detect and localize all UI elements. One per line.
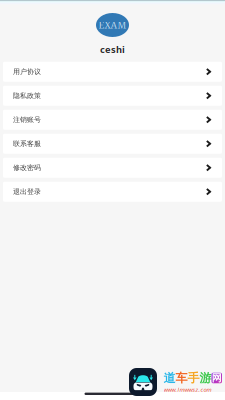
staticText: 注销账号 xyxy=(13,115,41,124)
staticText: 用户协议 xyxy=(13,67,41,76)
button[interactable]: 修改密码 xyxy=(3,158,222,178)
staticText: 道 xyxy=(163,370,175,385)
staticText: ceshi xyxy=(100,43,125,56)
staticText: 手 xyxy=(187,370,199,385)
staticText: 网 xyxy=(212,372,222,384)
button[interactable]: 注销账号 xyxy=(3,110,222,130)
staticText: 游 xyxy=(199,370,211,385)
staticText: EXAM xyxy=(98,19,126,31)
staticText: 隐私政策 xyxy=(13,91,41,100)
staticText: 联系客服 xyxy=(13,139,41,148)
staticText: 车 xyxy=(175,370,187,385)
staticText: 修改密码 xyxy=(13,163,41,172)
button[interactable]: 隐私政策 xyxy=(3,86,222,106)
staticText: www.lmwwsz.com xyxy=(163,386,211,394)
staticText: 退出登录 xyxy=(13,187,41,196)
button[interactable]: 用户协议 xyxy=(3,62,222,82)
button[interactable]: 联系客服 xyxy=(3,134,222,154)
button[interactable]: 退出登录 xyxy=(3,182,222,202)
